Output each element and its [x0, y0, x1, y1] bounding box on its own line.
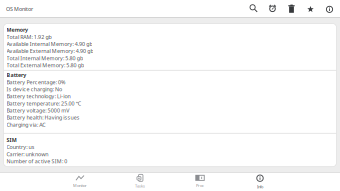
staticText: Charging via: AC — [6, 121, 45, 128]
staticText: Monitor — [73, 183, 87, 188]
staticText: OS Monitor — [6, 5, 33, 13]
staticText: Tasks — [135, 183, 145, 189]
staticText: Is device charging: No — [6, 86, 62, 93]
button[interactable]: Search — [244, 0, 263, 18]
staticText: Battery — [6, 71, 26, 79]
staticText: Available External Memory: 4.90 gb — [6, 47, 93, 54]
button[interactable]: Proc — [170, 172, 230, 191]
staticText: Total Internal Memory: 5.80 gb — [6, 54, 83, 62]
staticText: Number of active SIM: 0 — [6, 158, 67, 165]
button[interactable]: Tasks — [110, 172, 170, 191]
button[interactable]: Favourites — [301, 0, 320, 18]
staticText: Battery technology: Li-ion — [6, 93, 70, 100]
staticText: Carrier: unknown — [6, 150, 48, 158]
staticText: SIM — [6, 136, 17, 143]
staticText: Total RAM: 1.92 gb — [6, 33, 51, 40]
button[interactable]: Clear — [282, 0, 301, 18]
staticText: Country: us — [6, 143, 35, 150]
button[interactable]: Info — [230, 172, 290, 191]
staticText: Available Internal Memory: 4.90 gb — [6, 40, 92, 47]
button[interactable]: Monitor — [50, 172, 110, 191]
staticText: Info — [257, 184, 263, 189]
staticText: Memory — [6, 26, 28, 33]
staticText: Battery voltage: 5000 mV — [6, 107, 69, 114]
button[interactable]: About — [320, 0, 339, 18]
staticText: Battery temperature: 25.00 °C — [6, 100, 81, 107]
staticText: Proc — [196, 183, 204, 188]
staticText: Battery health: Having issues — [6, 114, 80, 121]
button[interactable]: Alarms — [263, 0, 282, 18]
staticText: Total External Memory: 5.80 gb — [6, 62, 84, 69]
staticText: Battery Percentage: 0% — [6, 79, 65, 86]
